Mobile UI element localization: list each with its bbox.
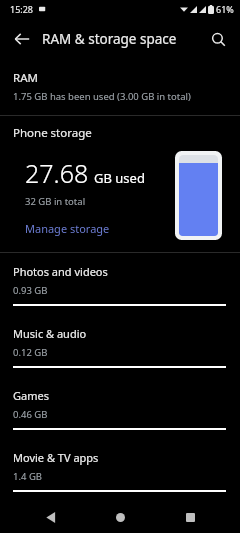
staticText: 15:28 bbox=[10, 3, 34, 15]
staticText: RAM & storage space bbox=[42, 30, 177, 48]
staticText: 0.93 GB bbox=[13, 284, 48, 297]
staticText: Music & audio bbox=[13, 326, 87, 341]
staticText: RAM bbox=[13, 70, 38, 86]
button[interactable]: RAM bbox=[0, 60, 240, 115]
button[interactable]: Photos and videos bbox=[0, 253, 240, 315]
button[interactable]: Search bbox=[202, 23, 234, 55]
button[interactable]: Home bbox=[100, 501, 140, 533]
staticText: Games bbox=[13, 388, 49, 403]
staticText: 1.4 GB bbox=[13, 470, 42, 483]
button[interactable]: Games bbox=[0, 377, 240, 439]
staticText: Movie & TV apps bbox=[13, 450, 99, 465]
staticText: Photos and videos bbox=[13, 264, 108, 279]
staticText: 27.68 bbox=[25, 156, 89, 190]
staticText: 0.46 GB bbox=[13, 408, 48, 421]
staticText: GB used bbox=[94, 169, 145, 187]
button[interactable]: Back bbox=[6, 23, 38, 55]
staticText: Phone storage bbox=[13, 125, 92, 141]
staticText: 32 GB in total bbox=[25, 195, 86, 208]
button[interactable]: Back bbox=[30, 501, 70, 533]
staticText: 0.12 GB bbox=[13, 346, 48, 359]
button[interactable]: Manage storage bbox=[25, 221, 110, 236]
staticText: 61% bbox=[216, 3, 234, 15]
staticText: Manage storage bbox=[25, 221, 110, 236]
button[interactable]: Music & audio bbox=[0, 315, 240, 377]
button[interactable]: Recent apps bbox=[170, 501, 210, 533]
button[interactable]: Movie & TV apps bbox=[0, 439, 240, 501]
staticText: 1.75 GB has been used (3.00 GB in total) bbox=[13, 90, 191, 103]
